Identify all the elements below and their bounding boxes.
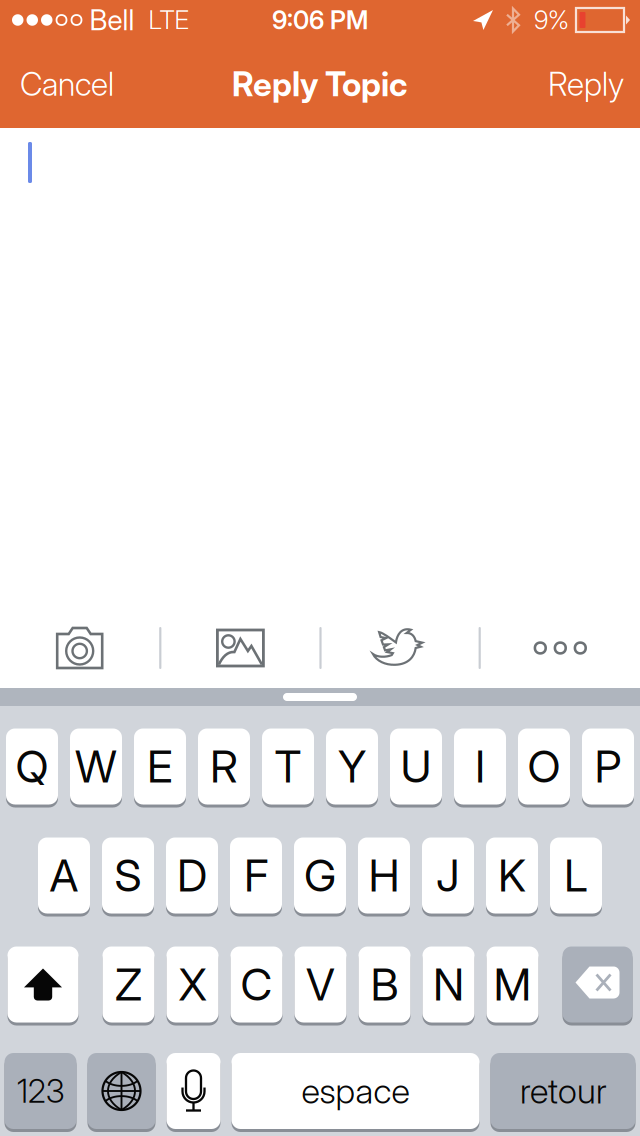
button[interactable]: J xyxy=(422,836,474,915)
button[interactable]: T xyxy=(262,727,314,806)
button[interactable]: Reply xyxy=(532,40,640,128)
button[interactable]: retour xyxy=(490,1051,635,1130)
staticText: 123 xyxy=(17,1072,64,1110)
button[interactable]: Z xyxy=(102,945,154,1024)
button[interactable]: Share to Twitter xyxy=(322,619,479,677)
staticText: L xyxy=(564,849,588,902)
staticText: 9:06 PM xyxy=(272,5,368,35)
button[interactable]: B xyxy=(358,945,410,1024)
button[interactable]: R xyxy=(198,727,250,806)
button[interactable]: G xyxy=(294,836,346,915)
staticText: retour xyxy=(520,1070,606,1112)
button[interactable]: E xyxy=(134,727,186,806)
staticText: S xyxy=(114,849,141,902)
staticText: O xyxy=(527,740,560,793)
staticText: G xyxy=(304,849,336,902)
staticText: H xyxy=(368,849,399,902)
staticText: P xyxy=(594,740,621,793)
staticText: Z xyxy=(115,958,142,1011)
button[interactable]: C xyxy=(230,945,282,1024)
staticText: D xyxy=(177,849,207,902)
staticText: T xyxy=(274,740,301,793)
staticText: W xyxy=(75,740,117,793)
button[interactable]: 123 xyxy=(4,1051,76,1130)
button[interactable]: Q xyxy=(6,727,58,806)
staticText: U xyxy=(400,740,431,793)
button[interactable]: More options xyxy=(481,619,640,677)
button[interactable]: I xyxy=(454,727,506,806)
button[interactable]: V xyxy=(294,945,346,1024)
button[interactable]: N xyxy=(422,945,474,1024)
staticText: I xyxy=(475,740,485,793)
button[interactable]: H xyxy=(358,836,410,915)
staticText: R xyxy=(210,740,238,793)
staticText: Reply xyxy=(548,65,624,103)
button[interactable]: F xyxy=(230,836,282,915)
staticText: espace xyxy=(301,1070,409,1112)
button[interactable]: Y xyxy=(326,727,378,806)
button[interactable] xyxy=(7,945,78,1024)
staticText: Y xyxy=(338,740,366,793)
staticText: Cancel xyxy=(20,65,114,103)
button[interactable]: O xyxy=(518,727,570,806)
button[interactable]: L xyxy=(550,836,602,915)
staticText: J xyxy=(436,849,460,902)
staticText: B xyxy=(370,958,398,1011)
button[interactable]: K xyxy=(486,836,538,915)
staticText: 9% xyxy=(534,5,569,35)
staticText: N xyxy=(433,958,464,1011)
button[interactable]: Take photo xyxy=(0,619,159,677)
staticText: LTE xyxy=(148,5,189,35)
staticText: K xyxy=(498,849,526,902)
staticText: C xyxy=(240,958,272,1011)
button[interactable]: U xyxy=(390,727,442,806)
staticText: M xyxy=(493,958,531,1011)
button[interactable]: S xyxy=(102,836,154,915)
button[interactable] xyxy=(87,1051,155,1130)
button[interactable] xyxy=(166,1051,220,1130)
staticText: Bell xyxy=(89,3,134,37)
staticText: F xyxy=(244,849,268,902)
button[interactable]: Photo library xyxy=(161,619,319,677)
button[interactable]: X xyxy=(166,945,218,1024)
button[interactable]: D xyxy=(166,836,218,915)
button[interactable]: P xyxy=(582,727,634,806)
button[interactable]: espace xyxy=(231,1051,479,1130)
staticText: X xyxy=(178,958,206,1011)
staticText: E xyxy=(147,740,173,793)
button[interactable]: M xyxy=(486,945,538,1024)
staticText: A xyxy=(49,849,78,902)
button[interactable]: Cancel xyxy=(0,40,130,128)
staticText: Q xyxy=(15,740,48,793)
staticText: V xyxy=(306,958,335,1011)
button[interactable] xyxy=(562,945,632,1024)
button[interactable]: W xyxy=(70,727,122,806)
staticText: Reply Topic xyxy=(232,64,408,104)
button[interactable]: A xyxy=(38,836,90,915)
